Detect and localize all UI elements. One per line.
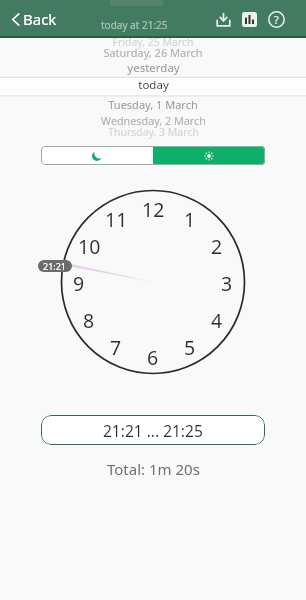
button[interactable]: Day xyxy=(153,146,265,165)
staticText: yesterday xyxy=(127,60,180,76)
staticText: 12 xyxy=(142,196,165,220)
button[interactable]: Friday, 25 March xyxy=(0,38,306,140)
staticText: 11 xyxy=(105,206,128,230)
staticText: Total: 1m 20s xyxy=(107,459,200,479)
staticText: 9 xyxy=(73,270,85,294)
staticText: 7 xyxy=(110,334,122,358)
button[interactable]: Help xyxy=(262,0,290,38)
staticText: 2 xyxy=(211,233,223,257)
staticText: Wednesday, 2 March xyxy=(101,113,206,128)
staticText: 3 xyxy=(221,270,233,294)
staticText: 6 xyxy=(147,344,159,368)
staticText: Tuesday, 1 March xyxy=(108,97,198,112)
staticText: Back xyxy=(23,9,57,29)
staticText: 21:21 xyxy=(43,260,67,272)
staticText: Thursday, 3 March xyxy=(108,125,199,139)
button[interactable]: Night xyxy=(41,146,153,165)
staticText: 8 xyxy=(83,307,95,331)
staticText: 4 xyxy=(211,307,223,331)
staticText: 10 xyxy=(78,233,101,257)
staticText: 21:21 ... 21:25 xyxy=(103,420,203,441)
staticText: 1 xyxy=(184,206,196,230)
button[interactable]: Back xyxy=(0,9,65,29)
button[interactable]: 21:21 ... 21:25 xyxy=(41,415,265,445)
button[interactable]: Statistics xyxy=(236,0,262,38)
staticText: today xyxy=(138,77,169,93)
staticText: Friday, 25 March xyxy=(112,35,194,49)
staticText: 5 xyxy=(184,334,196,358)
staticText: today at 21:25 xyxy=(101,18,168,32)
button[interactable]: Download xyxy=(210,0,236,38)
staticText: Saturday, 26 March xyxy=(103,45,203,60)
staticText: ? xyxy=(274,12,279,27)
